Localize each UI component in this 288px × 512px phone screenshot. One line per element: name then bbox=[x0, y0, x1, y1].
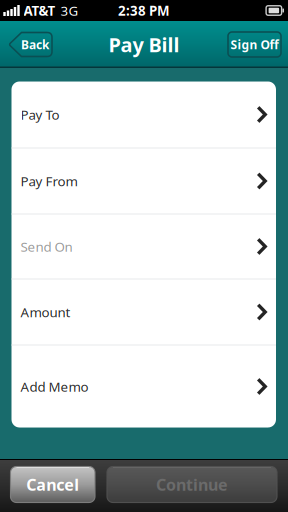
staticText: 2:38 PM bbox=[118, 2, 170, 19]
staticText: Pay Bill bbox=[108, 31, 179, 58]
button[interactable]: Back bbox=[8, 31, 53, 57]
staticText: Continue bbox=[156, 474, 228, 495]
staticText: Send On bbox=[20, 238, 72, 255]
button[interactable]: Pay From bbox=[11, 148, 276, 213]
staticText: Amount bbox=[20, 303, 70, 321]
staticText: 3G bbox=[60, 2, 78, 19]
staticText: Sign Off bbox=[230, 36, 278, 52]
staticText: Cancel bbox=[26, 474, 79, 495]
staticText: AT&T bbox=[23, 2, 55, 19]
button[interactable]: Add Memo bbox=[11, 345, 276, 427]
button[interactable]: Amount bbox=[11, 279, 276, 344]
button[interactable]: Sign Off bbox=[228, 32, 281, 57]
button[interactable]: Continue bbox=[107, 466, 277, 502]
staticText: Add Memo bbox=[20, 378, 88, 395]
button[interactable]: Pay To bbox=[11, 81, 276, 147]
staticText: Pay From bbox=[20, 172, 77, 190]
button[interactable]: Send On bbox=[11, 214, 276, 278]
staticText: Pay To bbox=[20, 106, 59, 123]
staticText: Back bbox=[21, 36, 49, 52]
button[interactable]: Cancel bbox=[10, 466, 95, 502]
